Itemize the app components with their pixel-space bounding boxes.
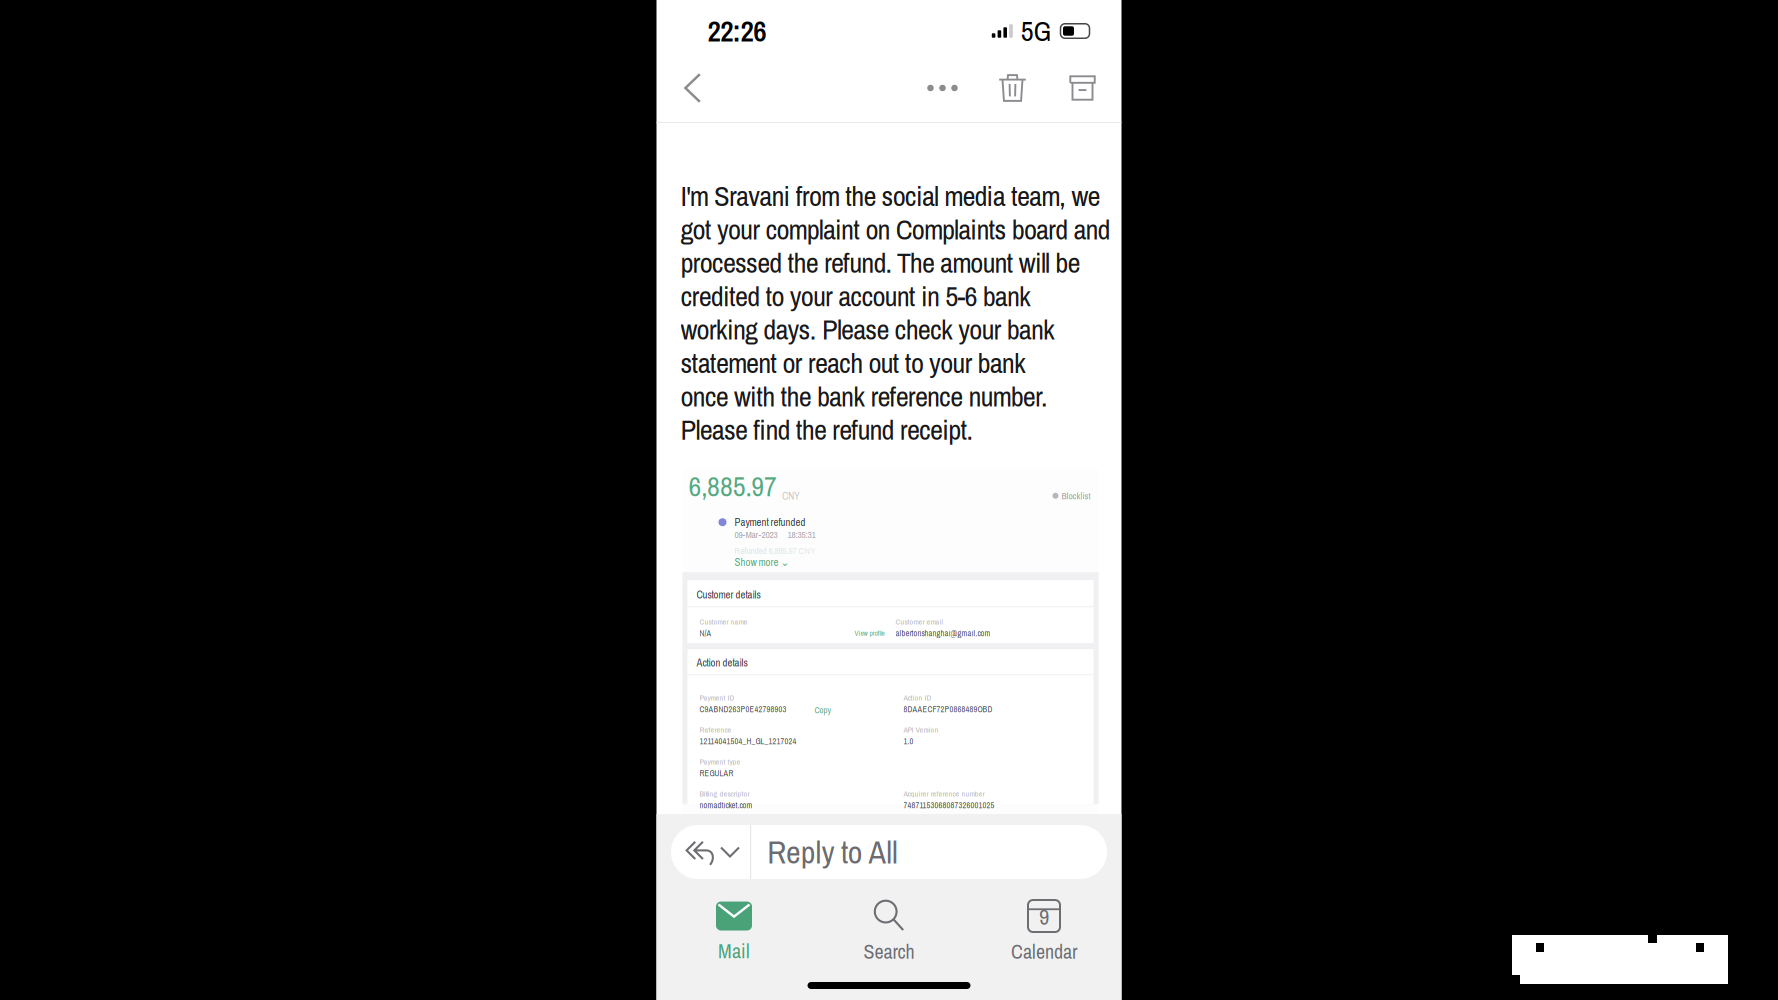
button[interactable]: More options bbox=[920, 59, 964, 117]
button[interactable]: Mail bbox=[656, 887, 811, 967]
staticText: albertorishanghai@gmail.com bbox=[895, 628, 990, 639]
staticText: Customer name bbox=[699, 616, 747, 627]
staticText: Blocklist bbox=[1061, 489, 1090, 502]
staticText: Calendar bbox=[1011, 938, 1077, 965]
staticText: Reference bbox=[699, 724, 731, 735]
button[interactable]: 9 bbox=[966, 887, 1121, 967]
staticText: Billing descriptor bbox=[699, 788, 749, 799]
staticText: Show more ⌄ bbox=[734, 555, 789, 569]
staticText: Copy bbox=[814, 704, 831, 716]
staticText: Please find the refund receipt. bbox=[680, 410, 973, 449]
staticText: Refunded 6,885.97 CNY bbox=[734, 544, 815, 557]
staticText: REGULAR bbox=[699, 768, 733, 779]
staticText: CNY bbox=[782, 489, 800, 503]
staticText: Payment ID bbox=[699, 692, 734, 703]
staticText: 09-Mar-2023 bbox=[734, 528, 777, 541]
staticText: 22:26 bbox=[707, 11, 766, 51]
staticText: 8DAAECF72P0868489OBD bbox=[903, 704, 992, 715]
button[interactable]: Archive bbox=[1060, 59, 1104, 117]
staticText: 74871153068087326001025 bbox=[903, 800, 994, 811]
button[interactable]: Reply to All bbox=[671, 825, 1107, 879]
staticText: 6,885.97 bbox=[688, 467, 777, 505]
button[interactable]: Back bbox=[670, 59, 714, 117]
staticText: Reply to All bbox=[767, 830, 898, 873]
staticText: I'm Sravani from the social media team, … bbox=[680, 176, 1101, 215]
button[interactable]: Delete bbox=[990, 59, 1034, 117]
staticText: Mail bbox=[718, 937, 750, 964]
staticText: API Version bbox=[903, 724, 938, 735]
staticText: credited to your account in 5-6 bank bbox=[680, 277, 1031, 315]
staticText: statement or reach out to your bank bbox=[680, 343, 1026, 382]
staticText: Payment refunded bbox=[734, 515, 805, 529]
staticText: processed the refund. The amount will be bbox=[680, 243, 1080, 282]
staticText: N/A bbox=[699, 628, 711, 639]
staticText: 1.0 bbox=[903, 736, 913, 747]
staticText: once with the bank reference number. bbox=[680, 377, 1048, 415]
staticText: 5G bbox=[1021, 12, 1051, 50]
staticText: C9ABND263P0E42798903 bbox=[699, 704, 786, 715]
staticText: 18:35:31 bbox=[787, 528, 815, 541]
staticText: working days. Please check your bank bbox=[680, 310, 1055, 348]
staticText: View profile bbox=[854, 628, 884, 638]
staticText: Acquirer reference number bbox=[903, 788, 984, 799]
staticText: Payment type bbox=[699, 756, 740, 767]
staticText: nomadticket.com bbox=[699, 800, 752, 811]
staticText: Action details bbox=[696, 655, 747, 670]
staticText: Customer email bbox=[895, 616, 942, 627]
staticText: Customer details bbox=[696, 587, 760, 602]
staticText: Action ID bbox=[903, 692, 931, 703]
button[interactable]: Search bbox=[811, 887, 966, 967]
staticText: 9 bbox=[1039, 901, 1049, 932]
staticText: got your complaint on Complaints board a… bbox=[680, 210, 1111, 248]
staticText: Search bbox=[863, 938, 914, 965]
staticText: 12114041504_H_GL_1217024 bbox=[699, 736, 796, 747]
